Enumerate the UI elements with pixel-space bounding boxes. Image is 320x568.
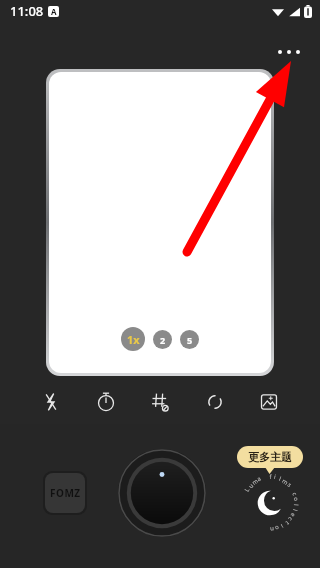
- staticText: L: [242, 486, 251, 494]
- staticText: m: [250, 477, 260, 487]
- staticText: l: [277, 475, 282, 483]
- button[interactable]: Switch camera: [198, 385, 232, 419]
- button[interactable]: Luma films collection: [239, 472, 301, 534]
- button[interactable]: 2: [153, 330, 172, 349]
- staticText: a: [255, 474, 262, 483]
- button[interactable]: 1x: [121, 327, 145, 351]
- button[interactable]: Grid off: [143, 385, 177, 419]
- button[interactable]: FOMZ: [43, 471, 87, 515]
- staticText: A: [51, 6, 57, 17]
- staticText: l: [291, 508, 299, 512]
- staticText: 2: [160, 334, 166, 346]
- staticText: o: [292, 496, 300, 501]
- staticText: i: [279, 522, 285, 530]
- button[interactable]: Timer off: [89, 385, 123, 419]
- staticText: 更多主题: [248, 450, 292, 464]
- staticText: 1x: [127, 332, 140, 347]
- button[interactable]: Shutter: [118, 449, 206, 537]
- staticText: f: [269, 473, 272, 481]
- button[interactable]: 更多主题: [237, 446, 303, 468]
- staticText: FOMZ: [50, 486, 81, 500]
- staticText: o: [274, 524, 280, 532]
- button[interactable]: 5: [180, 330, 199, 349]
- staticText: 11:08: [10, 2, 44, 20]
- button[interactable]: More options: [272, 43, 306, 61]
- button[interactable]: Gallery: [252, 385, 286, 419]
- staticText: c: [290, 491, 299, 497]
- staticText: c: [286, 515, 294, 523]
- button[interactable]: Flash off: [34, 385, 68, 419]
- staticText: l: [292, 504, 300, 506]
- staticText: u: [247, 482, 255, 490]
- staticText: n: [270, 525, 274, 533]
- staticText: m: [280, 477, 290, 487]
- staticText: e: [288, 511, 297, 519]
- staticText: i: [273, 473, 277, 481]
- staticText: 5: [187, 334, 193, 346]
- staticText: t: [284, 519, 291, 527]
- staticText: s: [286, 481, 293, 489]
